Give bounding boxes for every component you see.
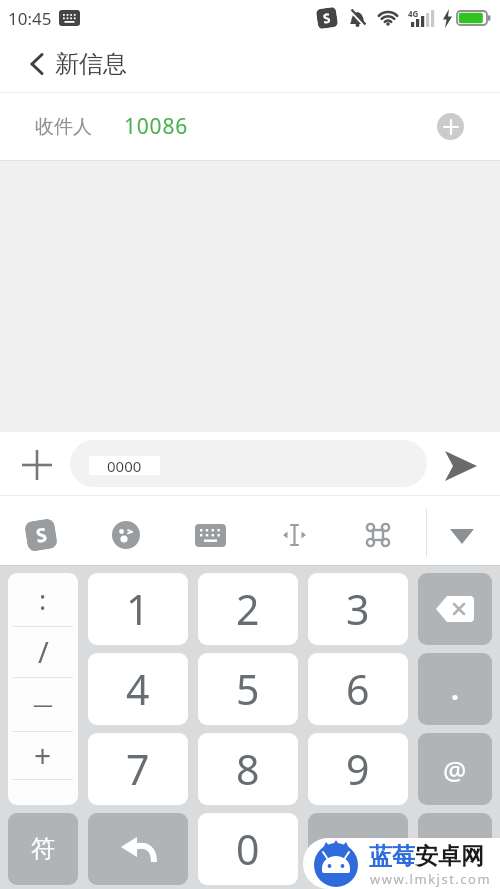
- button[interactable]: [450, 529, 474, 544]
- button[interactable]: [308, 813, 408, 885]
- button[interactable]: 9: [308, 733, 408, 805]
- staticText: 10:45: [8, 7, 52, 30]
- button[interactable]: 0: [198, 813, 298, 885]
- button[interactable]: 1: [88, 573, 188, 645]
- staticText: .: [451, 670, 459, 708]
- staticText: S: [322, 8, 332, 27]
- button[interactable]: 2: [198, 573, 298, 645]
- staticText: —: [33, 691, 53, 718]
- button[interactable]: S: [24, 518, 58, 552]
- button[interactable]: 5: [198, 653, 298, 725]
- button[interactable]: [418, 813, 492, 885]
- staticText: 2: [236, 581, 260, 637]
- button[interactable]: .: [418, 653, 492, 725]
- staticText: 新信息: [55, 49, 127, 79]
- button[interactable]: [112, 521, 140, 549]
- staticText: 4: [126, 661, 150, 717]
- button[interactable]: [195, 524, 226, 547]
- button[interactable]: [88, 813, 188, 885]
- staticText: www.lmkjst.com: [370, 870, 492, 888]
- staticText: 9: [346, 741, 370, 797]
- button[interactable]: [437, 113, 464, 140]
- button[interactable]: :: [8, 573, 78, 626]
- staticText: 3: [346, 581, 370, 637]
- button[interactable]: 新信息: [0, 36, 500, 92]
- staticText: 4G: [408, 8, 419, 19]
- staticText: 7: [126, 741, 150, 797]
- button[interactable]: 4: [88, 653, 188, 725]
- button[interactable]: +: [8, 731, 78, 779]
- button[interactable]: 0000: [70, 440, 427, 487]
- staticText: 6: [346, 661, 370, 717]
- button[interactable]: [22, 450, 52, 480]
- button[interactable]: 8: [198, 733, 298, 805]
- staticText: /: [38, 632, 49, 671]
- staticText: S: [34, 521, 49, 549]
- staticText: 安卓网: [415, 842, 484, 871]
- button[interactable]: 3: [308, 573, 408, 645]
- staticText: 0000: [107, 456, 142, 475]
- staticText: 0: [236, 821, 260, 877]
- staticText: 符: [31, 834, 55, 864]
- button[interactable]: —: [8, 677, 78, 731]
- staticText: @: [443, 752, 467, 787]
- staticText: :: [39, 581, 47, 618]
- staticText: 5: [236, 661, 260, 717]
- button[interactable]: [282, 523, 307, 547]
- button[interactable]: 6: [308, 653, 408, 725]
- staticText: 1: [126, 581, 150, 637]
- button[interactable]: 7: [88, 733, 188, 805]
- staticText: 10086: [124, 112, 189, 141]
- button[interactable]: [365, 522, 391, 548]
- staticText: 蓝莓: [369, 842, 415, 871]
- button[interactable]: /: [8, 626, 78, 677]
- staticText: 8: [236, 741, 260, 797]
- button[interactable]: 符: [8, 813, 78, 885]
- staticText: +: [34, 735, 52, 776]
- staticText: 收件人: [35, 115, 92, 139]
- button[interactable]: @: [418, 733, 492, 805]
- button[interactable]: [443, 448, 479, 484]
- button[interactable]: [418, 573, 492, 645]
